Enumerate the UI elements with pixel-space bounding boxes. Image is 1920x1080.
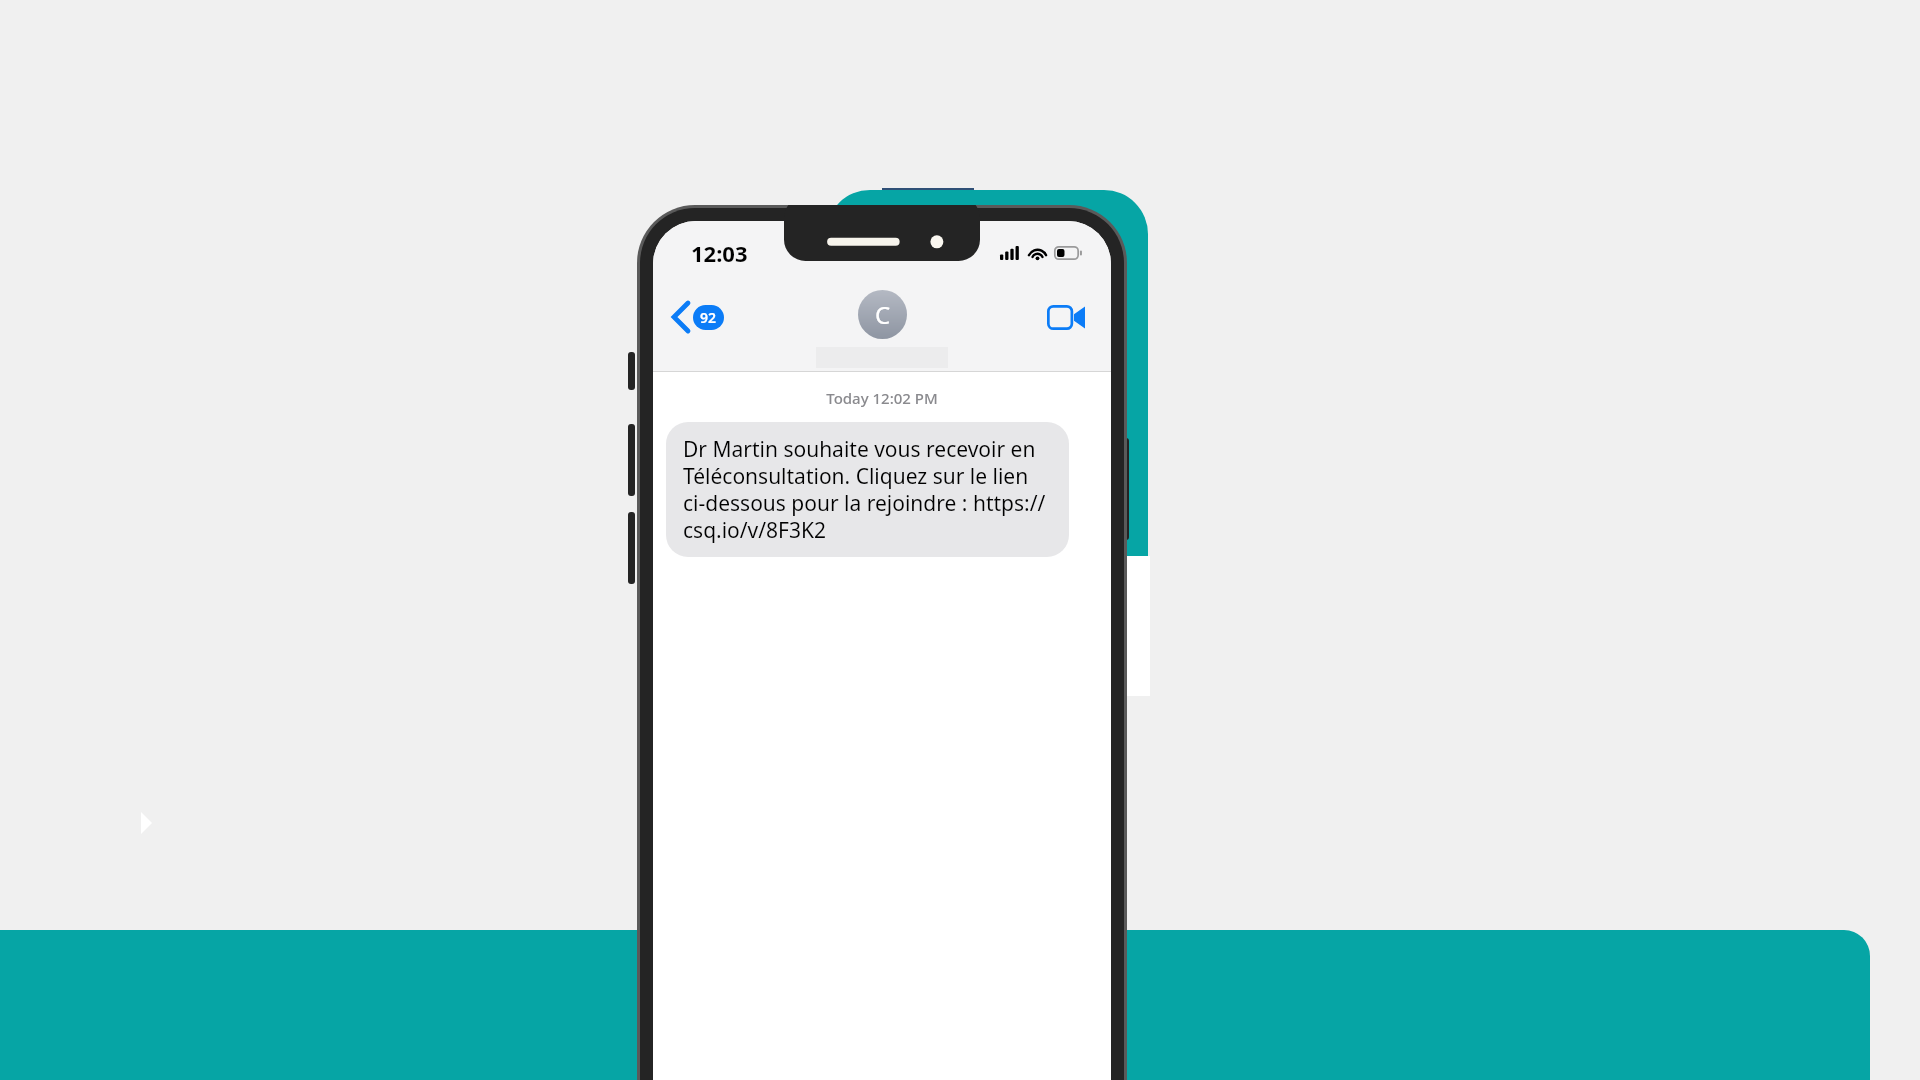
staticText: C [875, 298, 891, 331]
staticText: Dr Martin souhaite vous recevoir en Télé… [683, 435, 1052, 544]
staticText: Today 12:02 PM [653, 388, 1111, 408]
button[interactable]: Video call [1041, 299, 1091, 336]
staticText: 92 [700, 308, 717, 327]
button[interactable]: Back, 92 unread [665, 297, 732, 337]
button[interactable]: Contact C [858, 290, 907, 339]
button[interactable]: Dr Martin souhaite vous recevoir en Télé… [666, 422, 1069, 557]
staticText: 12:03 [691, 238, 748, 268]
